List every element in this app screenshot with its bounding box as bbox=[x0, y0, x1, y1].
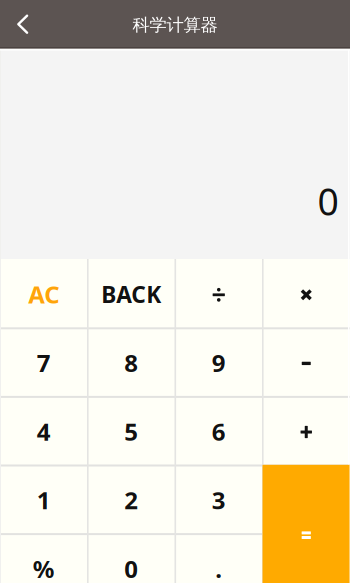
button[interactable]: AC bbox=[1, 260, 87, 327]
button[interactable]: 8 bbox=[88, 328, 174, 395]
staticText: AC bbox=[28, 278, 59, 310]
button[interactable]: 0 bbox=[88, 534, 174, 583]
button[interactable]: 3 bbox=[176, 465, 262, 533]
staticText: 4 bbox=[37, 415, 51, 447]
button[interactable]: 5 bbox=[88, 397, 174, 464]
button[interactable]: 7 bbox=[1, 328, 87, 395]
button[interactable]: 4 bbox=[1, 397, 87, 464]
button[interactable]: BACK bbox=[88, 260, 174, 327]
button[interactable]: Minus bbox=[263, 328, 349, 395]
staticText: 7 bbox=[37, 347, 51, 379]
button[interactable]: Divide bbox=[176, 260, 262, 327]
button[interactable]: . bbox=[176, 534, 262, 583]
staticText: 3 bbox=[212, 484, 226, 516]
staticText: 6 bbox=[212, 415, 226, 447]
button[interactable]: Back bbox=[0, 0, 44, 47]
button[interactable]: 9 bbox=[176, 328, 262, 395]
button[interactable]: 6 bbox=[176, 397, 262, 464]
staticText: % bbox=[33, 553, 55, 583]
button[interactable]: Equals bbox=[262, 465, 350, 583]
button[interactable]: Plus bbox=[263, 397, 349, 464]
staticText: 9 bbox=[212, 347, 226, 379]
staticText: 0 bbox=[124, 553, 138, 583]
button[interactable]: % bbox=[1, 534, 87, 583]
staticText: . bbox=[215, 553, 222, 583]
staticText: 2 bbox=[124, 484, 138, 516]
staticText: 0 bbox=[317, 176, 338, 226]
button[interactable]: Multiply bbox=[263, 260, 349, 327]
staticText: 1 bbox=[37, 484, 51, 516]
staticText: 科学计算器 bbox=[132, 14, 217, 36]
button[interactable]: 2 bbox=[88, 465, 174, 533]
staticText: 5 bbox=[124, 415, 138, 447]
staticText: BACK bbox=[101, 279, 161, 309]
button[interactable]: 1 bbox=[1, 465, 87, 533]
staticText: 8 bbox=[124, 347, 138, 379]
